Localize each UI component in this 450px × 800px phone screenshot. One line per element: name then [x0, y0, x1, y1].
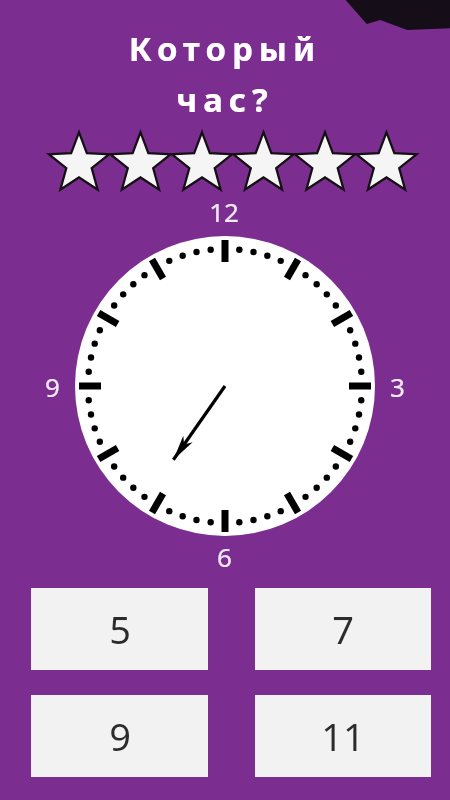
staticText: 9 [45, 369, 60, 404]
staticText: 5 [109, 603, 131, 655]
staticText: 12 [209, 194, 239, 229]
staticText: 6 [217, 539, 232, 574]
button[interactable]: 9 [31, 695, 208, 777]
staticText: 11 [321, 710, 365, 762]
button[interactable]: 11 [255, 695, 431, 777]
staticText: 7 [332, 603, 354, 655]
staticText: 9 [109, 710, 131, 762]
button[interactable]: 7 [255, 588, 431, 670]
staticText: час? [0, 77, 450, 122]
button[interactable]: 5 [31, 588, 208, 670]
staticText: 3 [390, 369, 405, 404]
staticText: Который [0, 26, 450, 71]
